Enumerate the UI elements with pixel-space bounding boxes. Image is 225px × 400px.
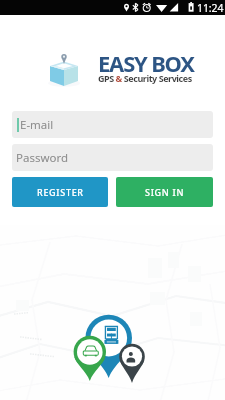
button[interactable]: E-mail	[12, 111, 213, 138]
button[interactable]: REGISTER	[12, 177, 108, 207]
staticText: EASY BOX	[98, 48, 194, 78]
staticText: 11:24	[197, 1, 224, 15]
button[interactable]: Password	[12, 144, 213, 171]
staticText: SIGN IN	[145, 186, 185, 198]
staticText: E-mail	[20, 117, 54, 133]
staticText: GPS & Security Services	[98, 72, 192, 84]
button[interactable]: SIGN IN	[116, 177, 213, 207]
staticText: Password	[16, 150, 69, 166]
staticText: REGISTER	[37, 186, 84, 198]
